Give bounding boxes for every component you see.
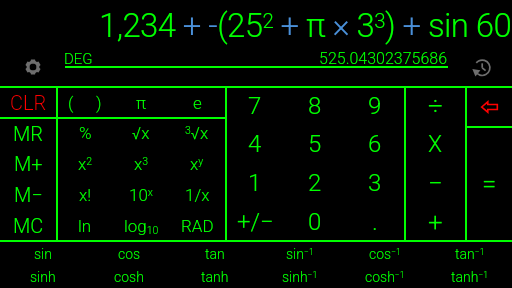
button[interactable]: cos [86,242,172,265]
button[interactable]: 4 [225,125,285,163]
staticText: ( [68,93,74,113]
staticText: ln [78,216,92,236]
staticText: 0 [308,208,322,236]
staticText: x3 [134,154,149,174]
button[interactable]: M− [0,179,57,210]
staticText: − [428,168,443,198]
button[interactable]: 2 [285,163,345,202]
staticText: CLR [10,91,47,114]
staticText: +/− [237,208,274,236]
button[interactable]: xy [169,148,225,179]
staticText: 1 [248,169,262,197]
button[interactable]: sin−1 [257,242,342,265]
staticText: tanh [201,269,229,285]
button[interactable]: + [405,202,466,241]
button[interactable]: ÷ [405,87,466,125]
button[interactable]: 9 [345,87,405,125]
staticText: xy [190,154,204,174]
staticText: 3√x [185,123,209,143]
button[interactable]: x2 [57,148,113,179]
button[interactable]: cos−1 [342,242,427,265]
staticText: cos [118,246,141,262]
button[interactable]: 10x [113,179,169,210]
button[interactable]: 3√x [169,118,225,148]
button[interactable]: 1/x [169,179,225,210]
staticText: RAD [181,216,214,236]
button[interactable]: sinh−1 [257,265,342,288]
staticText: cosh−1 [365,269,405,285]
button[interactable]: +/− [225,202,285,241]
button[interactable]: % [57,118,113,148]
staticText: 5 [308,130,322,158]
button[interactable]: tanh−1 [427,265,512,288]
button[interactable]: tan [172,242,257,265]
staticText: 4 [248,130,262,158]
button[interactable]: Settings [25,59,41,75]
button[interactable]: cosh−1 [342,265,427,288]
staticText: 7 [248,92,262,120]
staticText: % [79,123,92,143]
button[interactable]: log10 [113,210,169,241]
staticText: tan−1 [455,246,485,262]
button[interactable]: e [169,87,225,118]
staticText: X [428,131,443,158]
staticText: 10x [129,185,153,205]
button[interactable]: 7 [225,87,285,125]
staticText: sin−1 [286,246,314,262]
button[interactable]: RAD [169,210,225,241]
staticText: 3 [368,169,382,197]
button[interactable]: tan−1 [427,242,512,265]
staticText: 2 [308,169,322,197]
button[interactable]: ln [57,210,113,241]
button[interactable]: cosh [86,265,172,288]
button[interactable]: . [345,202,405,241]
staticText: 6 [368,130,382,158]
button[interactable]: CLR [0,87,57,118]
staticText: sinh−1 [282,269,318,285]
staticText: cos−1 [369,246,401,262]
staticText: x! [79,185,92,205]
button[interactable]: M+ [0,148,57,179]
staticText: cosh [114,269,144,285]
button[interactable]: ( [57,87,85,118]
staticText: 9 [368,92,382,120]
staticText: + [428,207,443,237]
staticText: 525.04302375686 [319,49,448,67]
staticText: . [372,208,378,236]
button[interactable]: tanh [172,265,257,288]
staticText: tan [205,246,225,262]
staticText: 1/x [185,185,210,205]
button[interactable]: DEG [64,50,93,67]
staticText: ÷ [428,91,443,121]
button[interactable]: sinh [0,265,86,288]
staticText: DEG [64,50,93,67]
button[interactable]: X [405,125,466,163]
staticText: x2 [78,154,93,174]
button[interactable]: MR [0,118,57,148]
button[interactable]: π [113,87,169,118]
staticText: sin [34,246,52,262]
button[interactable]: √x [113,118,169,148]
button[interactable]: − [405,163,466,202]
staticText: M− [14,183,43,206]
staticText: √x [132,123,150,143]
staticText: sinh [30,269,56,285]
button[interactable]: MC [0,210,57,241]
button[interactable]: x! [57,179,113,210]
button[interactable]: 3 [345,163,405,202]
button[interactable]: 5 [285,125,345,163]
button[interactable]: x3 [113,148,169,179]
button[interactable]: = [466,127,512,241]
staticText: M+ [14,152,43,175]
button[interactable]: 1 [225,163,285,202]
staticText: log10 [124,216,159,236]
staticText: MC [13,214,44,237]
button[interactable]: 0 [285,202,345,241]
button[interactable]: History [471,57,491,77]
button[interactable]: Backspace [466,87,512,126]
button[interactable]: 8 [285,87,345,125]
staticText: MR [13,122,44,145]
button[interactable]: 6 [345,125,405,163]
button[interactable]: sin [0,242,86,265]
button[interactable]: ) [85,87,113,118]
